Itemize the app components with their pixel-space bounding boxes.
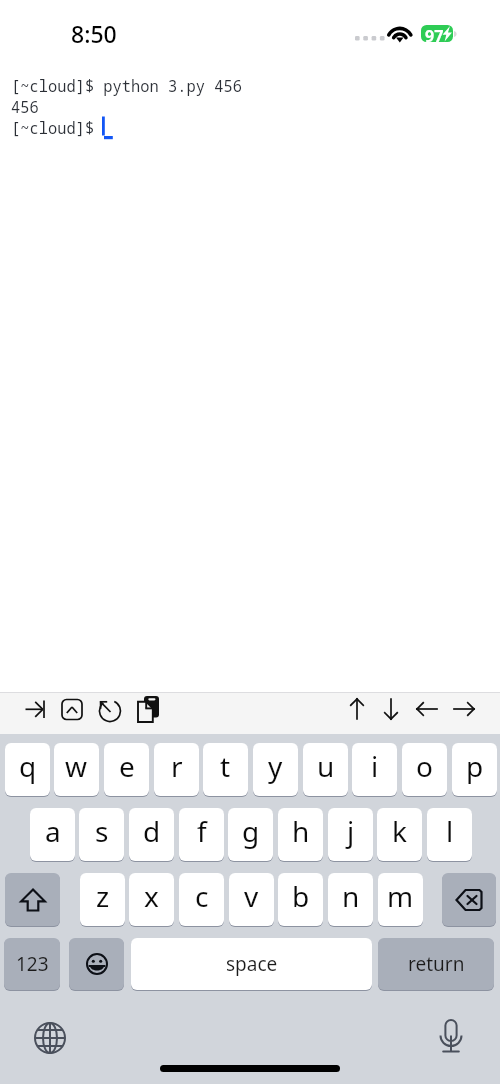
staticText: b [292,877,310,915]
button[interactable]: n [328,873,373,926]
button[interactable]: Dictate [431,1011,471,1051]
button[interactable]: Arrow right [447,696,481,730]
staticText: o [416,747,433,785]
button[interactable]: return [378,938,494,990]
staticText: r [171,747,183,785]
staticText: p [466,747,484,785]
button[interactable]: i [352,743,397,796]
button[interactable]: z [80,873,125,926]
staticText: w [65,747,88,785]
staticText: a [45,812,61,850]
staticText: space [226,951,278,977]
staticText: j [347,812,355,850]
staticText: n [342,877,360,915]
staticText: x [144,877,159,915]
staticText: v [244,877,259,915]
button[interactable]: k [377,808,422,861]
staticText: 8:50 [71,18,117,49]
button[interactable]: space [131,938,372,990]
button[interactable]: Control [55,696,89,730]
staticText: m [387,877,414,915]
button[interactable]: q [5,743,50,796]
button[interactable]: d [129,808,174,861]
button[interactable]: Undo [93,696,127,730]
staticText: k [392,812,407,850]
button[interactable]: p [452,743,497,796]
staticText: y [268,747,283,785]
button[interactable]: Change keyboard [30,1018,70,1058]
button[interactable]: 123 [4,938,60,990]
staticText: [~cloud]$ python 3.py 456 [11,76,242,97]
button[interactable]: Arrow up [340,696,374,730]
staticText: f [197,812,207,850]
button[interactable]: b [278,873,323,926]
button[interactable]: Shift [5,873,60,926]
staticText: c [195,877,209,915]
staticText: l [446,812,454,850]
staticText: return [408,951,465,977]
button[interactable]: s [79,808,124,861]
button[interactable]: v [229,873,274,926]
button[interactable]: u [303,743,348,796]
button[interactable]: r [154,743,199,796]
button[interactable]: e [104,743,149,796]
button[interactable]: x [129,873,174,926]
staticText: t [220,747,231,785]
staticText: e [119,747,135,785]
staticText: h [292,812,310,850]
button[interactable]: Tab [18,696,52,730]
button[interactable]: o [402,743,447,796]
staticText: 97 [425,25,444,47]
button[interactable]: j [328,808,373,861]
button[interactable]: l [427,808,472,861]
button[interactable]: Paste [132,696,166,730]
button[interactable]: Delete [442,873,496,926]
button[interactable]: t [203,743,248,796]
button[interactable]: a [30,808,75,861]
button[interactable]: w [54,743,99,796]
staticText: 456 [11,97,39,118]
staticText: s [95,812,109,850]
staticText: [~cloud]$ [11,118,95,139]
staticText: g [242,812,260,850]
button[interactable]: Emoji [69,938,124,990]
button[interactable]: c [179,873,224,926]
button[interactable]: g [228,808,273,861]
button[interactable]: h [278,808,323,861]
button[interactable]: Arrow down [374,696,408,730]
button[interactable]: m [378,873,423,926]
button[interactable]: y [253,743,298,796]
staticText: z [96,877,110,915]
staticText: q [19,747,37,785]
button[interactable]: Arrow left [410,696,444,730]
staticText: d [143,812,161,850]
button[interactable]: f [179,808,224,861]
staticText: i [371,747,379,785]
staticText: 123 [16,951,49,977]
staticText: u [317,747,335,785]
